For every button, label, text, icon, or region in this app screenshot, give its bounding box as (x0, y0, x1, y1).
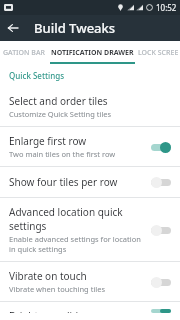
button[interactable]: Brightness slider (0, 302, 180, 320)
staticText: Select and order tiles (9, 94, 108, 108)
button[interactable]: NOTIFICATION DRAWER (48, 41, 137, 64)
button[interactable] (148, 222, 174, 238)
staticText: NOTIFICATION DRAWER (51, 48, 134, 58)
staticText: Customize Quick Setting tiles (9, 109, 112, 119)
staticText: Two main tiles on the first row (9, 149, 116, 159)
staticText: Vibrate on touch (9, 269, 87, 283)
button[interactable]: Vibrate on touch (0, 262, 180, 301)
button[interactable] (148, 139, 174, 155)
staticText: Build Tweaks (34, 19, 116, 37)
button[interactable]: LOCK SCREE (137, 41, 180, 64)
button[interactable]: Enlarge first row (0, 127, 180, 166)
staticText: Quick Settings (9, 70, 65, 81)
button[interactable] (148, 309, 174, 313)
staticText: Enlarge first row (9, 134, 87, 148)
button[interactable]: Advanced location quick settings (0, 198, 180, 261)
button[interactable]: Select and order tiles (0, 87, 180, 126)
button[interactable]: Show four tiles per row (0, 167, 180, 197)
button[interactable]: GATION BAR (0, 41, 48, 64)
staticText: Brightness slider (9, 309, 89, 313)
button[interactable] (148, 274, 174, 290)
staticText: Advanced location quick settings (9, 205, 144, 233)
staticText: Vibrate when touching tiles (9, 284, 106, 294)
button[interactable]: Back (0, 15, 26, 41)
staticText: Show four tiles per row (9, 175, 118, 189)
staticText: GATION BAR (3, 48, 45, 58)
staticText: Enable advanced settings for location in… (9, 234, 144, 254)
button[interactable] (148, 174, 174, 190)
staticText: LOCK SCREE (138, 48, 179, 58)
staticText: 10:52 (156, 2, 177, 13)
